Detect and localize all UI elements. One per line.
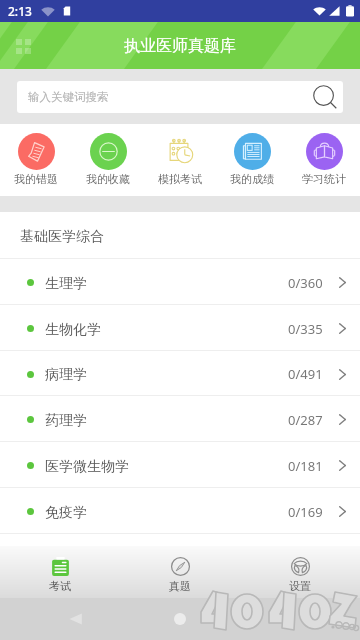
button[interactable]: 病理学 [0, 351, 360, 395]
staticText: 我的成绩 [230, 172, 274, 186]
button[interactable]: 生理学 [0, 259, 360, 304]
staticText: 真题 [169, 579, 191, 593]
staticText: 病理学 [45, 366, 87, 384]
button[interactable]: 生物化学 [0, 305, 360, 350]
staticText: 免疫学 [45, 504, 87, 522]
staticText: 我的收藏 [86, 172, 130, 186]
button[interactable]: 模拟考试 [144, 124, 216, 196]
button[interactable]: 我的收藏 [72, 124, 144, 196]
button[interactable]: 学习统计 [288, 124, 360, 196]
staticText: 设置 [289, 579, 311, 593]
staticText: 学习统计 [302, 172, 346, 186]
button[interactable]: 药理学 [0, 396, 360, 441]
staticText: 执业医师真题库 [124, 36, 236, 56]
staticText: 模拟考试 [158, 172, 202, 186]
button[interactable]: 我的成绩 [216, 124, 288, 196]
staticText: 0/169 [288, 503, 323, 521]
staticText: 生理学 [45, 275, 87, 293]
staticText: 我的错题 [14, 172, 58, 186]
button[interactable]: 我的错题 [0, 124, 72, 196]
staticText: 0/287 [288, 411, 323, 429]
button[interactable]: 真题 [120, 546, 240, 598]
button[interactable]: Back [57, 601, 93, 637]
staticText: 基础医学综合 [20, 228, 104, 246]
staticText: 0/491 [288, 365, 323, 383]
staticText: 考试 [49, 579, 71, 593]
button[interactable]: Home [162, 601, 198, 637]
staticText: 2:13 [8, 3, 32, 19]
staticText: 0/181 [288, 457, 323, 475]
staticText: 生物化学 [45, 321, 101, 339]
staticText: 0/360 [288, 274, 323, 292]
button[interactable]: 医学微生物学 [0, 442, 360, 487]
button[interactable]: Menu [5, 28, 41, 64]
staticText: 0/335 [288, 320, 323, 338]
button[interactable]: 设置 [240, 546, 360, 598]
button[interactable]: 考试 [0, 546, 120, 598]
button[interactable]: 免疫学 [0, 488, 360, 533]
button[interactable]: 输入关键词搜索 [17, 81, 343, 113]
staticText: 输入关键词搜索 [28, 90, 109, 104]
staticText: 药理学 [45, 412, 87, 430]
staticText: 医学微生物学 [45, 458, 129, 476]
